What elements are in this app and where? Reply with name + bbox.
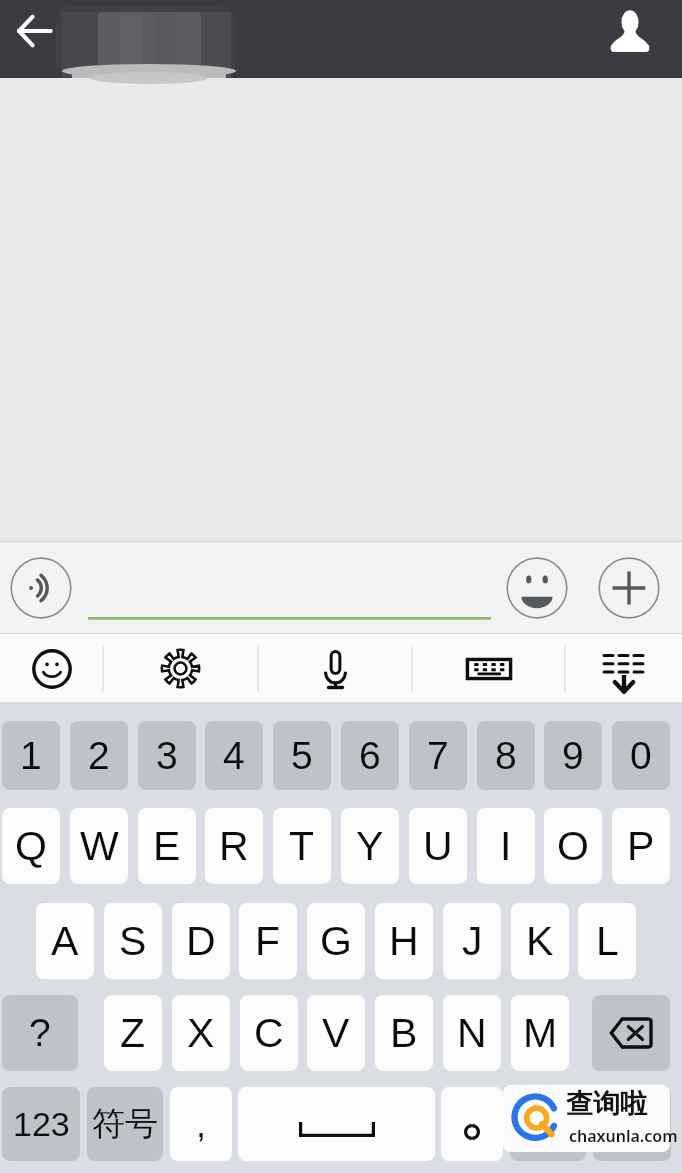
- button[interactable]: 5: [273, 721, 331, 790]
- staticText: P: [627, 823, 655, 869]
- button[interactable]: Y: [341, 808, 399, 884]
- staticText: W: [80, 823, 119, 869]
- button[interactable]: P: [612, 808, 670, 884]
- staticText: I: [500, 823, 512, 869]
- staticText: ,: [196, 1104, 207, 1144]
- staticText: U: [423, 823, 453, 869]
- button[interactable]: T: [273, 808, 331, 884]
- staticText: C: [254, 1010, 284, 1056]
- button[interactable]: 9: [544, 721, 602, 790]
- button[interactable]: Emoji: [506, 557, 568, 619]
- button[interactable]: Keyboard layout: [412, 634, 565, 703]
- staticText: L: [596, 918, 619, 964]
- button[interactable]: Contact profile: [602, 2, 658, 58]
- button[interactable]: enter-key: [593, 1087, 671, 1161]
- button[interactable]: Input settings: [103, 634, 258, 703]
- button[interactable]: I: [477, 808, 535, 884]
- staticText: D: [186, 918, 216, 964]
- button[interactable]: S: [104, 903, 162, 979]
- button[interactable]: A: [36, 903, 94, 979]
- button[interactable]: Emoji panel: [0, 634, 103, 703]
- button[interactable]: ?: [2, 995, 78, 1071]
- button[interactable]: Back: [6, 3, 62, 59]
- button[interactable]: G: [307, 903, 365, 979]
- staticText: V: [322, 1010, 350, 1056]
- button[interactable]: Q: [2, 808, 60, 884]
- button[interactable]: K: [511, 903, 569, 979]
- button[interactable]: 8: [477, 721, 535, 790]
- button[interactable]: C: [240, 995, 298, 1071]
- button[interactable]: R: [205, 808, 263, 884]
- staticText: H: [389, 918, 419, 964]
- button[interactable]: 123: [2, 1087, 80, 1161]
- button[interactable]: 3: [138, 721, 196, 790]
- staticText: 符号: [92, 1103, 158, 1145]
- staticText: ?: [29, 1011, 51, 1055]
- staticText: G: [320, 918, 352, 964]
- button[interactable]: 1: [2, 721, 60, 790]
- staticText: B: [390, 1010, 418, 1056]
- staticText: E: [153, 823, 181, 869]
- staticText: 查询啦: [566, 1087, 647, 1121]
- button[interactable]: More options: [598, 557, 660, 619]
- staticText: chaxunla.com: [569, 1125, 678, 1147]
- staticText: S: [119, 918, 147, 964]
- staticText: Y: [356, 823, 384, 869]
- button[interactable]: ,: [170, 1087, 232, 1161]
- button[interactable]: W: [70, 808, 128, 884]
- staticText: 1: [20, 734, 42, 778]
- button[interactable]: V: [307, 995, 365, 1071]
- staticText: Q: [15, 823, 47, 869]
- button[interactable]: B: [375, 995, 433, 1071]
- button[interactable]: bksp: [592, 995, 670, 1071]
- button[interactable]: J: [443, 903, 501, 979]
- staticText: 2: [88, 734, 110, 778]
- staticText: J: [462, 918, 483, 964]
- staticText: 9: [562, 734, 584, 778]
- button[interactable]: O: [544, 808, 602, 884]
- staticText: 3: [156, 734, 178, 778]
- staticText: K: [526, 918, 554, 964]
- button[interactable]: Voice typing: [258, 634, 412, 703]
- staticText: R: [219, 823, 249, 869]
- button[interactable]: H: [375, 903, 433, 979]
- staticText: 0: [630, 734, 652, 778]
- staticText: 7: [427, 734, 449, 778]
- button[interactable]: 4: [205, 721, 263, 790]
- button[interactable]: 6: [341, 721, 399, 790]
- button[interactable]: L: [578, 903, 636, 979]
- button[interactable]: X: [172, 995, 230, 1071]
- button[interactable]: ju: [441, 1087, 503, 1161]
- staticText: 4: [223, 734, 245, 778]
- button[interactable]: U: [409, 808, 467, 884]
- button[interactable]: emoji-key: [510, 1087, 586, 1161]
- staticText: 123: [13, 1105, 70, 1143]
- staticText: T: [289, 823, 315, 869]
- button[interactable]: Z: [104, 995, 162, 1071]
- button[interactable]: 7: [409, 721, 467, 790]
- button[interactable]: F: [239, 903, 297, 979]
- staticText: 8: [495, 734, 517, 778]
- button[interactable]: N: [443, 995, 501, 1071]
- staticText: A: [51, 918, 79, 964]
- button[interactable]: D: [172, 903, 230, 979]
- staticText: X: [187, 1010, 215, 1056]
- button[interactable]: 2: [70, 721, 128, 790]
- button[interactable]: space: [238, 1087, 435, 1161]
- staticText: O: [557, 823, 589, 869]
- staticText: 5: [291, 734, 313, 778]
- button[interactable]: Voice input: [10, 557, 72, 619]
- button[interactable]: Hide keyboard: [565, 634, 682, 703]
- staticText: 6: [359, 734, 381, 778]
- staticText: M: [523, 1010, 558, 1056]
- staticText: N: [457, 1010, 487, 1056]
- button[interactable]: 0: [612, 721, 670, 790]
- staticText: F: [255, 918, 281, 964]
- staticText: Z: [120, 1010, 146, 1056]
- button[interactable]: E: [138, 808, 196, 884]
- button[interactable]: 符号: [87, 1087, 163, 1161]
- button[interactable]: M: [511, 995, 569, 1071]
